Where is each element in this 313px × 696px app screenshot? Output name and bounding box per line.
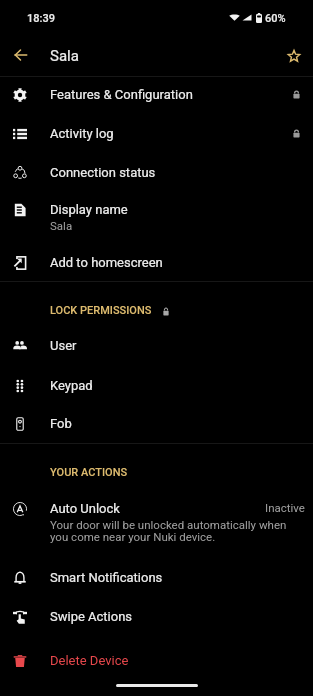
button[interactable]: Auto Unlock: [0, 490, 313, 542]
button[interactable]: Activity log: [0, 115, 313, 153]
staticText: Your door will be unlocked automatically…: [50, 518, 296, 544]
staticText: Add to homescreen: [50, 255, 163, 270]
staticText: Inactive: [265, 501, 305, 514]
button[interactable]: Connection status: [0, 154, 313, 192]
staticText: Display name: [50, 202, 128, 217]
staticText: Delete Device: [50, 653, 129, 668]
button[interactable]: Favorite: [279, 41, 309, 71]
staticText: Keypad: [50, 378, 93, 393]
button[interactable]: Swipe Actions: [0, 598, 313, 636]
button[interactable]: Fob: [0, 405, 313, 443]
button[interactable]: Features & Configuration: [0, 76, 313, 114]
button[interactable]: Display name: [0, 191, 313, 243]
staticText: YOUR ACTIONS: [50, 466, 128, 479]
staticText: Swipe Actions: [50, 609, 133, 624]
staticText: Activity log: [50, 126, 114, 141]
button[interactable]: Keypad: [0, 367, 313, 405]
button[interactable]: Smart Notifications: [0, 559, 313, 597]
staticText: Sala: [50, 219, 296, 232]
staticText: 60%: [265, 12, 286, 25]
button[interactable]: User: [0, 327, 313, 365]
staticText: 18:39: [27, 12, 55, 25]
button[interactable]: Add to homescreen: [0, 244, 313, 282]
staticText: Smart Notifications: [50, 570, 163, 585]
button[interactable]: Delete Device: [0, 642, 313, 680]
staticText: Fob: [50, 416, 72, 431]
staticText: Sala: [50, 47, 79, 65]
staticText: LOCK PERMISSIONS: [50, 304, 152, 317]
staticText: User: [50, 338, 77, 353]
staticText: Auto Unlock: [50, 501, 120, 516]
staticText: Connection status: [50, 165, 156, 180]
button[interactable]: Back: [5, 40, 35, 70]
staticText: Features & Configuration: [50, 87, 193, 102]
